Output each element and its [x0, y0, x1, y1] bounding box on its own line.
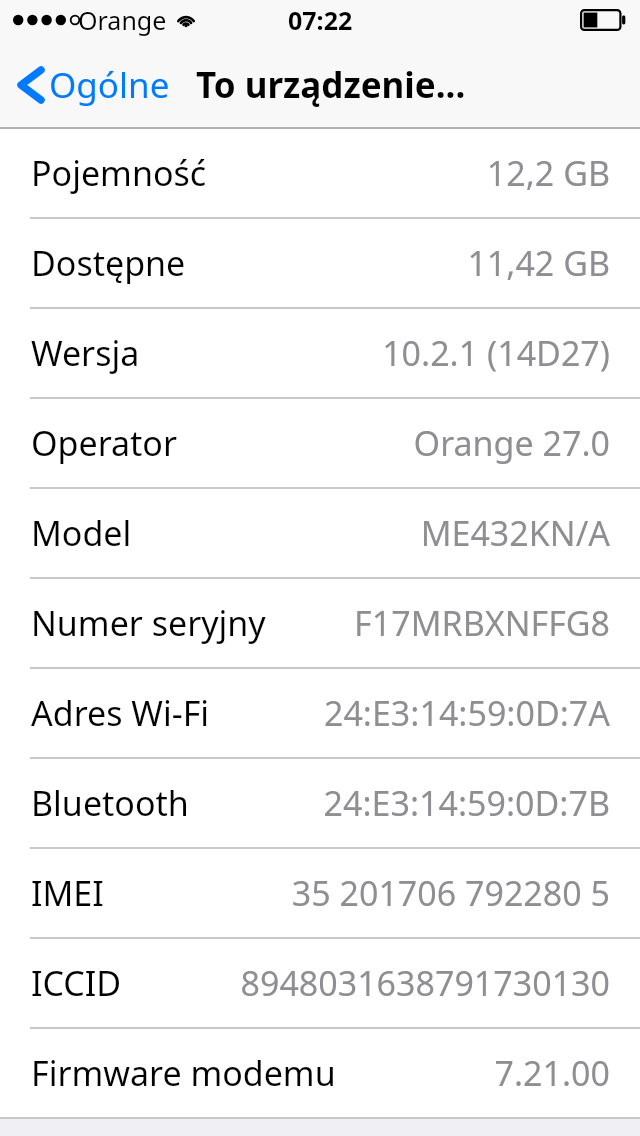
- button[interactable]: Pojemność: [0, 129, 640, 219]
- staticText: Pojemność: [31, 150, 207, 196]
- staticText: 35 201706 792280 5: [291, 870, 610, 916]
- button[interactable]: Numer seryjny: [0, 579, 640, 669]
- button[interactable]: Ogólne: [0, 53, 182, 117]
- staticText: Orange: [78, 3, 167, 37]
- staticText: To urządzenie...: [196, 61, 466, 109]
- button[interactable]: Dostępne: [0, 219, 640, 309]
- staticText: Bluetooth: [31, 780, 189, 826]
- staticText: IMEI: [31, 870, 104, 916]
- staticText: Wersja: [31, 330, 140, 376]
- button[interactable]: Wersja: [0, 309, 640, 399]
- staticText: F17MRBXNFFG8: [354, 600, 610, 646]
- staticText: 24:E3:14:59:0D:7B: [323, 780, 610, 826]
- staticText: Ogólne: [49, 61, 170, 109]
- staticText: 7.21.00: [494, 1050, 610, 1096]
- button[interactable]: Bluetooth: [0, 759, 640, 849]
- staticText: Adres Wi-Fi: [31, 690, 210, 736]
- staticText: 12,2 GB: [486, 150, 610, 196]
- staticText: Numer seryjny: [31, 600, 266, 646]
- staticText: 07:22: [288, 3, 353, 37]
- button[interactable]: Adres Wi-Fi: [0, 669, 640, 759]
- button[interactable]: Firmware modemu: [0, 1029, 640, 1119]
- button[interactable]: Model: [0, 489, 640, 579]
- button[interactable]: Operator: [0, 399, 640, 489]
- staticText: 10.2.1 (14D27): [382, 330, 610, 376]
- button[interactable]: IMEI: [0, 849, 640, 939]
- staticText: Orange 27.0: [413, 420, 610, 466]
- staticText: Operator: [31, 420, 177, 466]
- button[interactable]: ICCID: [0, 939, 640, 1029]
- staticText: 8948031638791730130: [240, 960, 610, 1006]
- staticText: Firmware modemu: [31, 1050, 336, 1096]
- staticText: ICCID: [31, 960, 122, 1006]
- staticText: ME432KN/A: [420, 510, 610, 556]
- staticText: 11,42 GB: [467, 240, 610, 286]
- staticText: 24:E3:14:59:0D:7A: [323, 690, 610, 736]
- staticText: Model: [31, 510, 132, 556]
- staticText: Dostępne: [31, 240, 186, 286]
